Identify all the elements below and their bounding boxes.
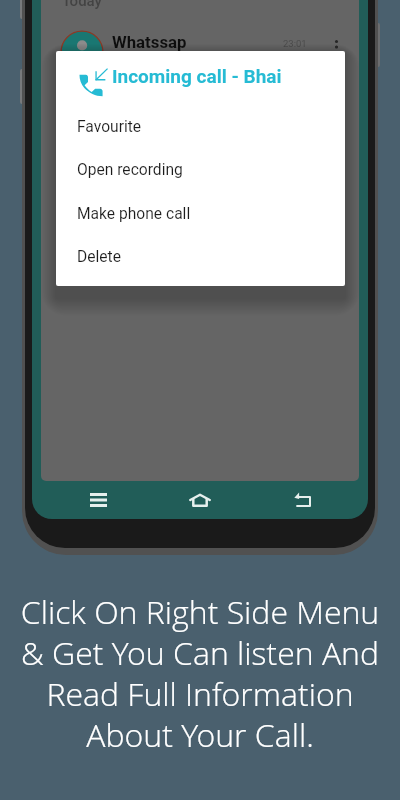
staticText: Open recording <box>77 161 183 179</box>
button[interactable]: More options <box>325 30 347 64</box>
staticText: Delete <box>77 248 121 266</box>
button[interactable]: Whatssap <box>112 32 187 52</box>
staticText: Make phone call <box>77 205 191 223</box>
staticText: 23:01 <box>283 38 307 49</box>
button[interactable]: Recents <box>76 478 120 519</box>
staticText: Favourite <box>77 118 142 136</box>
button[interactable]: Delete <box>56 235 345 278</box>
staticText: Incoming call - Bhai <box>112 65 282 87</box>
button[interactable]: Back <box>280 479 324 519</box>
button[interactable]: Whatssap call <box>60 30 104 74</box>
button[interactable]: Make phone call <box>56 192 345 235</box>
button[interactable]: Home <box>178 478 222 519</box>
staticText: Click On Right Side Menu & Get You Can l… <box>0 590 400 757</box>
button[interactable]: Favourite <box>56 105 345 148</box>
button[interactable]: Open recording <box>56 148 345 191</box>
staticText: Today <box>62 0 102 10</box>
